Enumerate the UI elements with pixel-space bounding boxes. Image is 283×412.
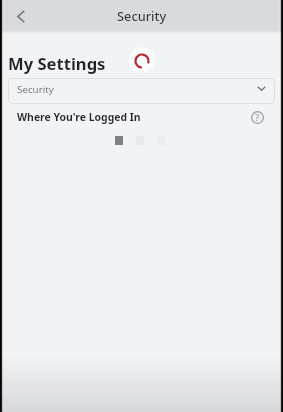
button[interactable]: Back xyxy=(9,5,32,28)
button[interactable]: Security xyxy=(8,78,275,104)
staticText: My Settings xyxy=(8,52,106,75)
staticText: Where You're Logged In xyxy=(17,110,141,124)
button[interactable]: Help xyxy=(250,110,265,125)
staticText: Security xyxy=(17,83,54,96)
staticText: Security xyxy=(117,7,167,24)
staticText: ? xyxy=(255,111,260,124)
